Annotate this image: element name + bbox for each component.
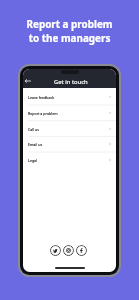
staticText: Email us: [28, 142, 43, 147]
button[interactable]: Call us: [23, 121, 116, 137]
staticText: Report a problem: [28, 111, 58, 116]
staticText: Legal: [28, 158, 38, 163]
staticText: Call us: [28, 127, 40, 132]
button[interactable]: Back: [23, 76, 33, 86]
staticText: Leave feedback: [28, 95, 55, 100]
staticText: Email us: [28, 142, 43, 147]
button[interactable]: Instagram: [63, 245, 74, 256]
staticText: Report a problem: [28, 111, 58, 116]
staticText: Legal: [28, 158, 38, 163]
staticText: Call us: [28, 127, 40, 132]
button[interactable]: Report a problem: [23, 105, 116, 121]
button[interactable]: Leave feedback: [23, 89, 116, 105]
staticText: Leave feedback: [28, 95, 55, 100]
staticText: Report a problem to the managers: [0, 17, 139, 45]
button[interactable]: Email us: [23, 136, 116, 152]
staticText: Get in touch: [54, 78, 88, 86]
button[interactable]: Twitter: [50, 245, 61, 256]
button[interactable]: Legal: [23, 152, 116, 168]
button[interactable]: Facebook: [76, 245, 87, 256]
